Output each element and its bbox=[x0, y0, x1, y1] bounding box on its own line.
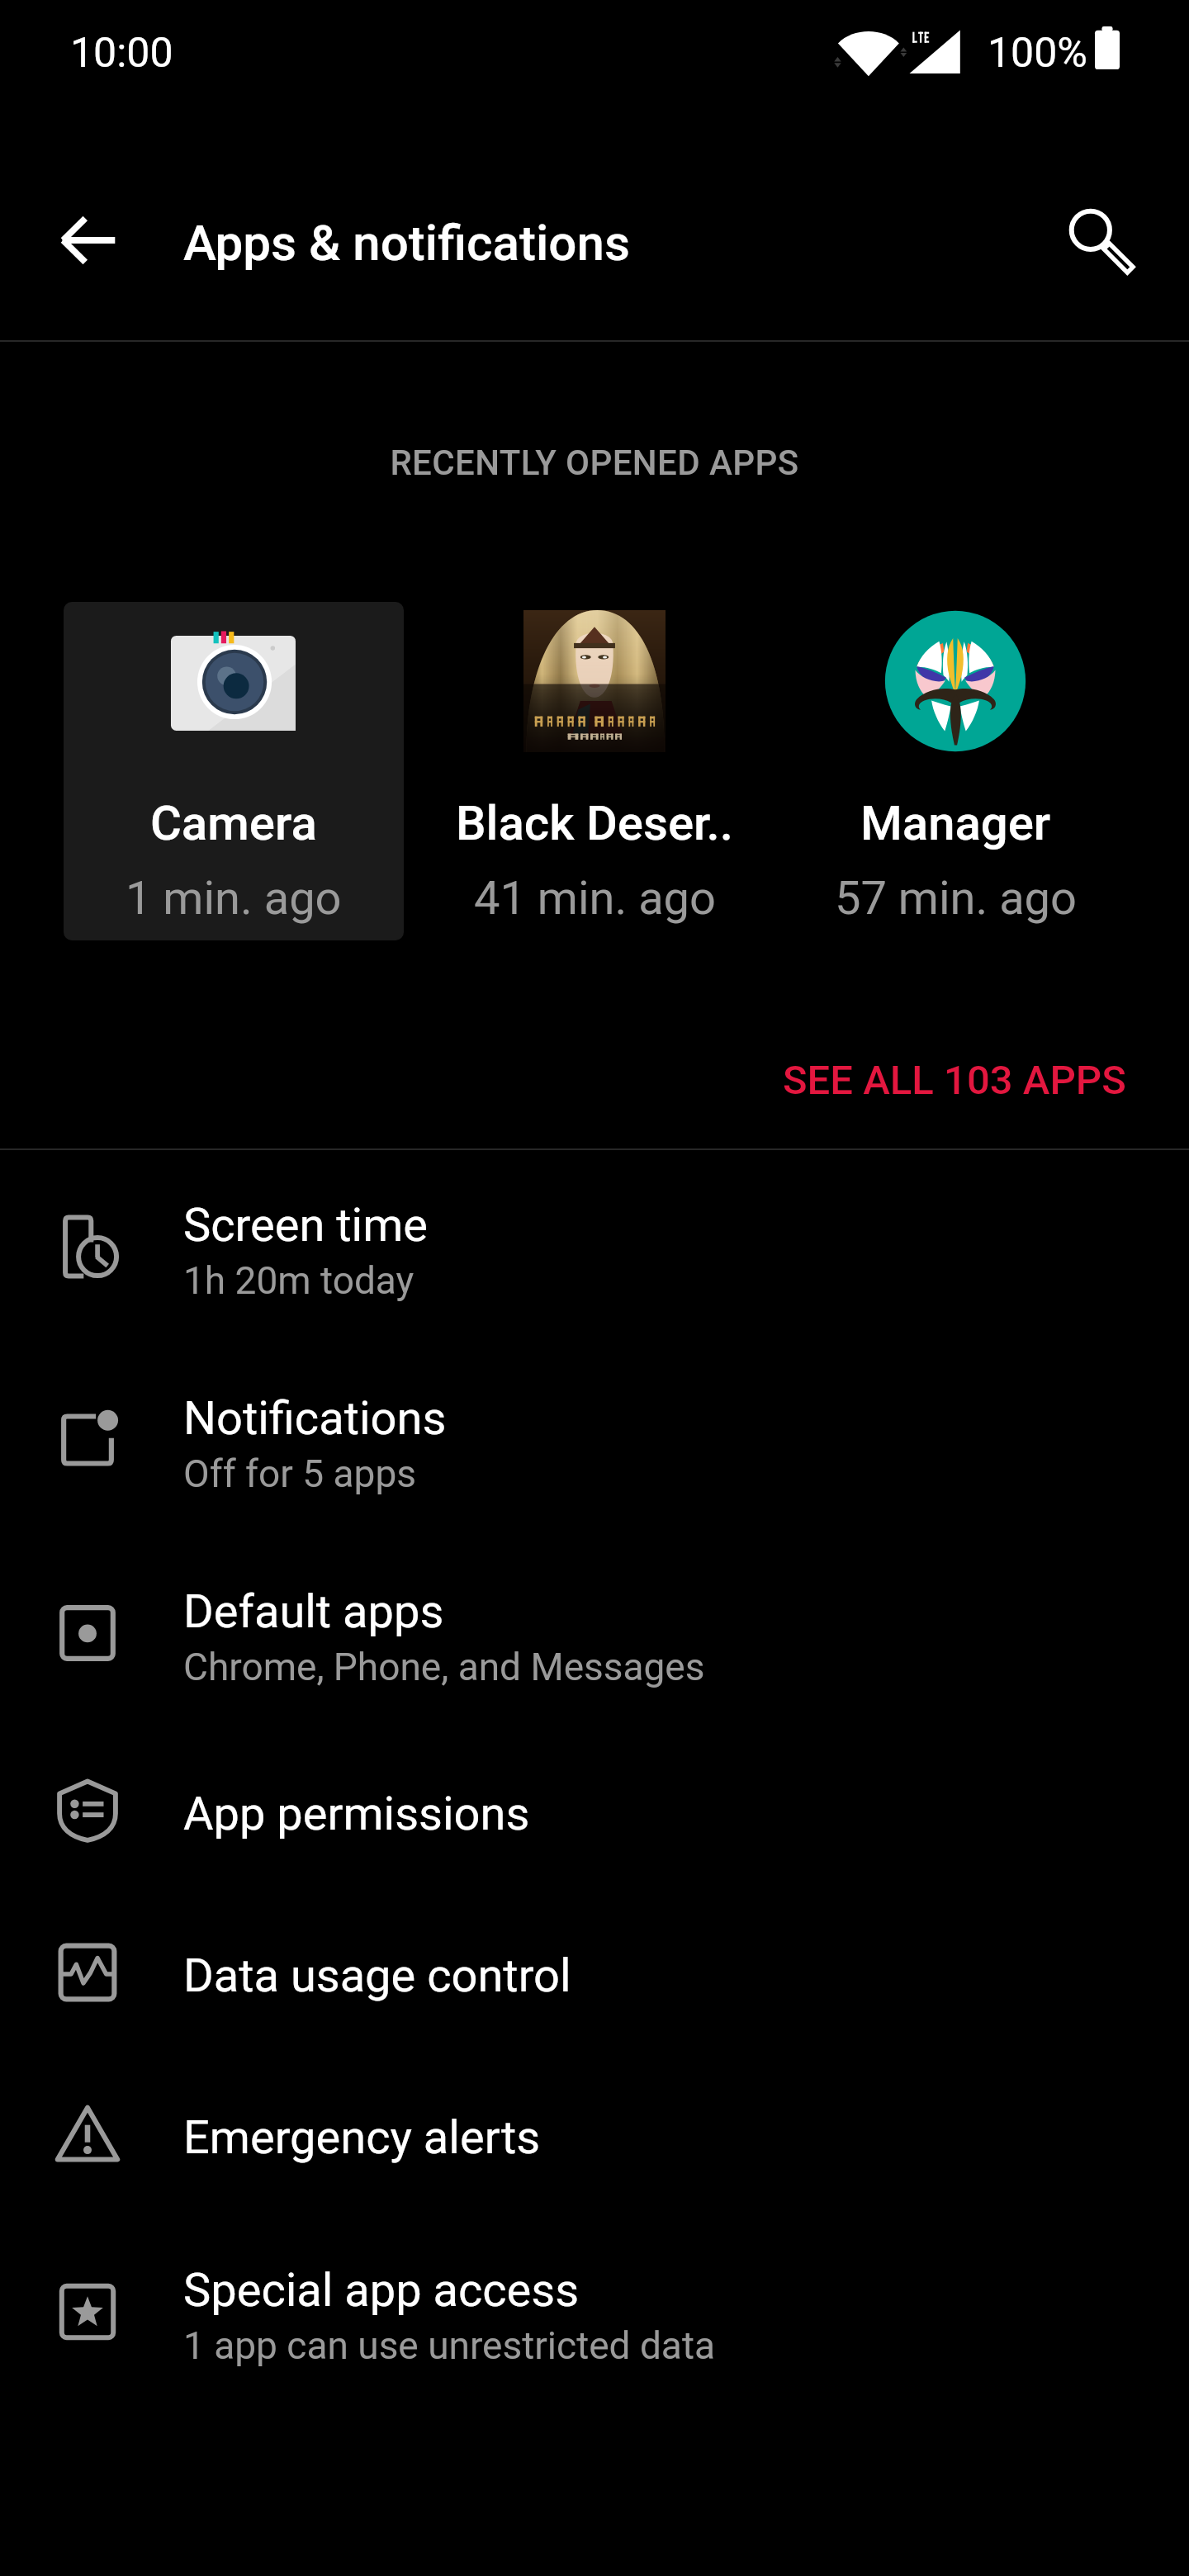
staticText: Camera bbox=[150, 795, 317, 851]
staticText: Data usage control bbox=[183, 1949, 571, 2003]
button[interactable]: SEE ALL 103 APPS bbox=[766, 1040, 1143, 1120]
staticText: Screen time bbox=[183, 1198, 428, 1252]
button[interactable]: Camera bbox=[64, 602, 404, 940]
button[interactable]: Emergency alerts bbox=[0, 2053, 1189, 2215]
staticText: App permissions bbox=[183, 1787, 530, 1841]
staticText: Manager bbox=[860, 795, 1051, 851]
button[interactable]: App permissions bbox=[0, 1730, 1189, 1892]
staticText: 100% bbox=[988, 29, 1087, 78]
staticText: 57 min. ago bbox=[835, 871, 1077, 926]
button[interactable]: Search bbox=[1046, 186, 1155, 295]
staticText: 1 min. ago bbox=[126, 871, 342, 926]
staticText: Special app access bbox=[183, 2263, 580, 2318]
button[interactable]: Screen time bbox=[0, 1150, 1189, 1343]
staticText: Black Deser.. bbox=[456, 795, 733, 851]
staticText: Notifications bbox=[183, 1391, 447, 1446]
staticText: 1h 20m today bbox=[183, 1258, 414, 1303]
button[interactable]: Manager bbox=[785, 602, 1125, 940]
staticText: RECENTLY OPENED APPS bbox=[0, 443, 1189, 483]
staticText: 41 min. ago bbox=[474, 871, 716, 926]
button[interactable]: Black Deser.. bbox=[424, 602, 765, 940]
staticText: Off for 5 apps bbox=[183, 1451, 416, 1496]
staticText: Default apps bbox=[183, 1584, 444, 1639]
staticText: 10:00 bbox=[70, 29, 173, 78]
button[interactable]: Data usage control bbox=[0, 1892, 1189, 2053]
staticText: 1 app can use unrestricted data bbox=[183, 2323, 715, 2368]
staticText: Apps & notifications bbox=[183, 214, 630, 272]
staticText: SEE ALL 103 APPS bbox=[783, 1057, 1126, 1104]
button[interactable]: Default apps bbox=[0, 1537, 1189, 1730]
staticText: Emergency alerts bbox=[183, 2110, 541, 2165]
button[interactable]: Notifications bbox=[0, 1343, 1189, 1537]
button[interactable]: Special app access bbox=[0, 2215, 1189, 2408]
staticText: Chrome, Phone, and Messages bbox=[183, 1645, 705, 1689]
button[interactable]: Back bbox=[33, 186, 142, 295]
